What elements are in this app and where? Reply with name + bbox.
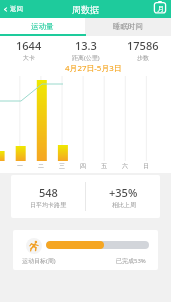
staticText: 大卡 xyxy=(23,54,35,62)
staticText: 步数 xyxy=(137,54,149,62)
staticText: 日平均卡路里 xyxy=(30,201,66,209)
staticText: 返回 xyxy=(10,5,23,13)
staticText: 日 xyxy=(143,162,149,170)
staticText: 548 xyxy=(39,185,58,200)
staticText: 四 xyxy=(80,162,86,170)
staticText: 相比上周 xyxy=(112,201,136,209)
staticText: 三 xyxy=(59,162,65,170)
staticText: 五 xyxy=(101,162,107,170)
button[interactable]: 返回 xyxy=(0,0,27,18)
staticText: 17586 xyxy=(127,38,159,53)
button[interactable]: 548 xyxy=(11,175,160,218)
staticText: 运动目标(周) xyxy=(22,257,56,265)
staticText: 睡眠时间 xyxy=(113,22,143,31)
staticText: 13.3 xyxy=(75,38,97,53)
staticText: 已完成53% xyxy=(116,257,146,265)
staticText: 1644 xyxy=(16,38,42,53)
staticText: 一 xyxy=(17,162,23,170)
button[interactable]: 运动量 xyxy=(0,18,85,36)
staticText: 二 xyxy=(38,162,44,170)
button[interactable]: 运动目标(周) xyxy=(13,230,158,270)
staticText: 运动量 xyxy=(31,22,54,31)
staticText: 月 xyxy=(157,4,164,13)
staticText: 距离(公里) xyxy=(72,54,100,62)
staticText: 4月27日-5月3日 xyxy=(65,63,122,74)
button[interactable]: 睡眠时间 xyxy=(85,18,171,36)
staticText: 六 xyxy=(122,162,128,170)
staticText: +35% xyxy=(109,185,138,200)
staticText: 周数据 xyxy=(72,4,99,15)
button[interactable]: Month view xyxy=(153,1,167,14)
